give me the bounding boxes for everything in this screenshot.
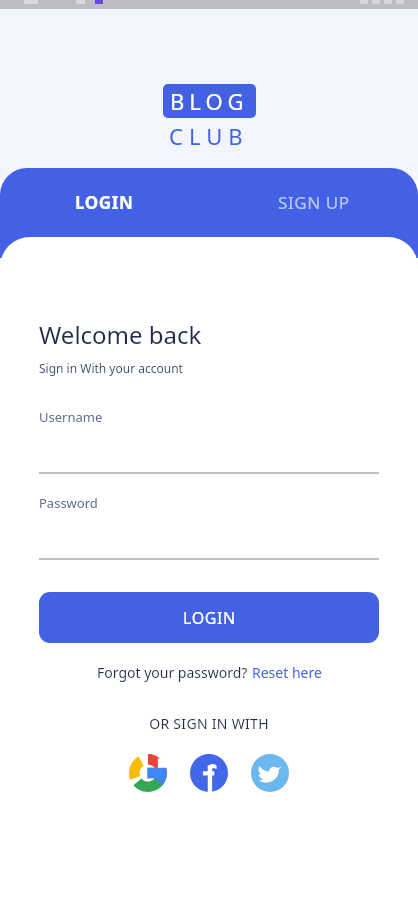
staticText: BLOG [170,86,249,116]
staticText: Username [39,408,103,426]
button[interactable]: Sign in with Twitter [249,752,291,794]
staticText: CLUB [169,121,249,151]
staticText: Forgot your password? [97,663,252,682]
button[interactable]: Reset here [252,663,322,682]
staticText: Sign in With your account [39,360,183,376]
button[interactable] [39,512,379,560]
staticText: OR SIGN IN WITH [39,714,379,733]
button[interactable]: Sign in with Google [127,752,169,794]
button[interactable] [39,426,379,474]
staticText: Welcome back [39,318,202,351]
staticText: Password [39,494,98,512]
button[interactable]: SIGN UP [209,168,418,237]
button[interactable]: LOGIN [39,592,379,643]
staticText: Reset here [252,663,322,682]
staticText: LOGIN [183,607,236,629]
staticText: LOGIN [75,191,134,214]
staticText: SIGN UP [278,191,350,214]
button[interactable]: LOGIN [0,168,209,237]
button[interactable]: Sign in with Facebook [188,752,230,794]
